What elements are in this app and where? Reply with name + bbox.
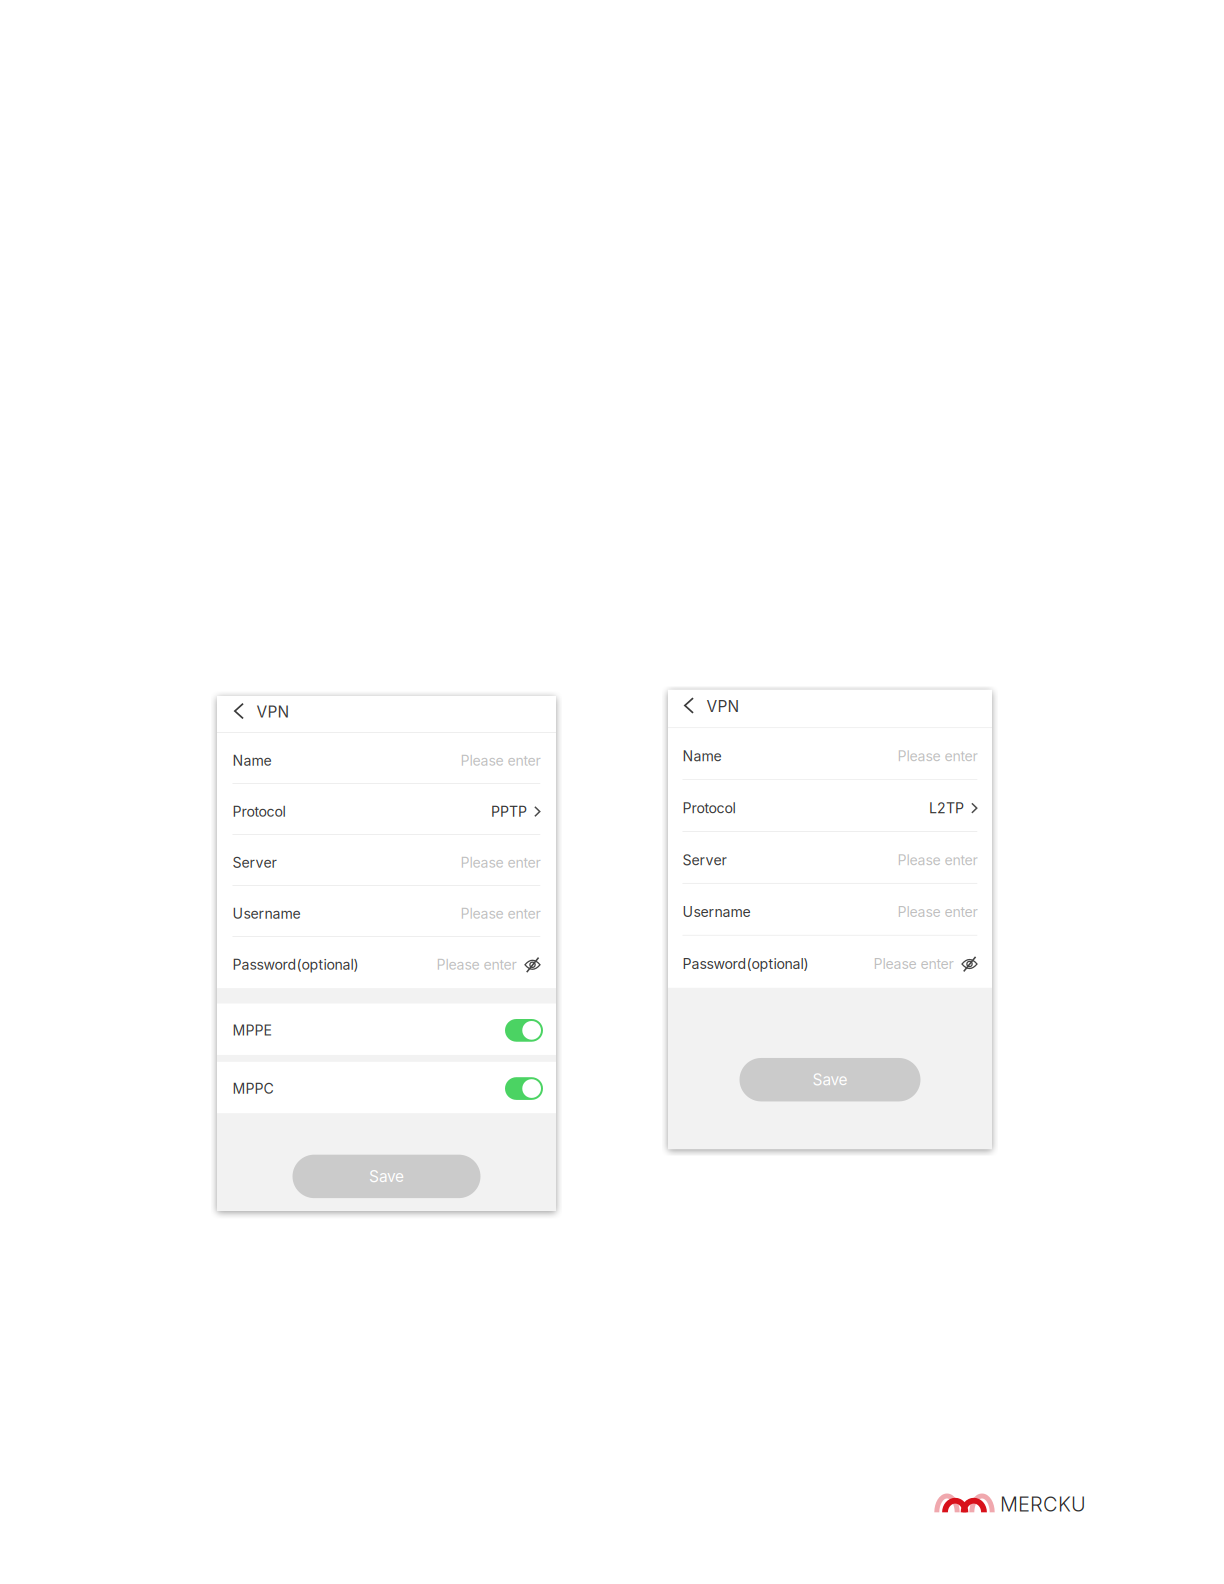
staticText: Name <box>232 752 271 769</box>
staticText: VPN <box>256 702 289 721</box>
staticText: Protocol <box>682 799 735 817</box>
button[interactable]: Username <box>668 884 992 936</box>
button[interactable]: Username <box>217 886 556 937</box>
staticText: Password(optional) <box>232 956 358 973</box>
staticText: Save <box>812 1070 847 1089</box>
staticText: Username <box>232 905 300 922</box>
staticText: Please enter <box>460 854 540 871</box>
button[interactable]: Server <box>217 835 556 886</box>
staticText: MPPE <box>232 1022 271 1039</box>
button[interactable]: Save <box>739 1058 920 1101</box>
staticText: Password(optional) <box>682 955 808 972</box>
staticText: Please enter <box>460 752 540 769</box>
staticText: Server <box>682 851 726 868</box>
button[interactable]: Password(optional) <box>668 936 992 988</box>
staticText: Please enter <box>897 903 977 920</box>
button[interactable]: MPPC <box>217 1062 556 1113</box>
staticText: Please enter <box>897 851 977 868</box>
staticText: L2TP <box>929 799 964 817</box>
staticText: VPN <box>706 697 739 716</box>
button[interactable]: Back <box>684 694 708 716</box>
staticText: Save <box>369 1167 404 1186</box>
staticText: Username <box>682 903 750 920</box>
staticText: MERCKU <box>1000 1492 1086 1516</box>
staticText: MPPC <box>232 1080 273 1097</box>
staticText: Protocol <box>232 803 285 820</box>
button[interactable]: Name <box>217 733 556 784</box>
button[interactable]: Save <box>292 1155 480 1198</box>
button[interactable]: Protocol <box>668 780 992 832</box>
button[interactable]: Protocol <box>217 784 556 835</box>
button[interactable]: MPPE <box>217 1004 556 1055</box>
staticText: Server <box>232 854 276 871</box>
staticText: Name <box>682 748 721 765</box>
staticText: PPTP <box>491 803 527 820</box>
button[interactable]: Password(optional) <box>217 937 556 988</box>
staticText: Please enter <box>873 955 953 972</box>
button[interactable]: Server <box>668 832 992 884</box>
staticText: Please enter <box>436 956 516 973</box>
button[interactable]: Name <box>668 728 992 780</box>
staticText: Please enter <box>460 905 540 922</box>
staticText: Please enter <box>897 748 977 765</box>
button[interactable]: Back <box>234 700 258 722</box>
